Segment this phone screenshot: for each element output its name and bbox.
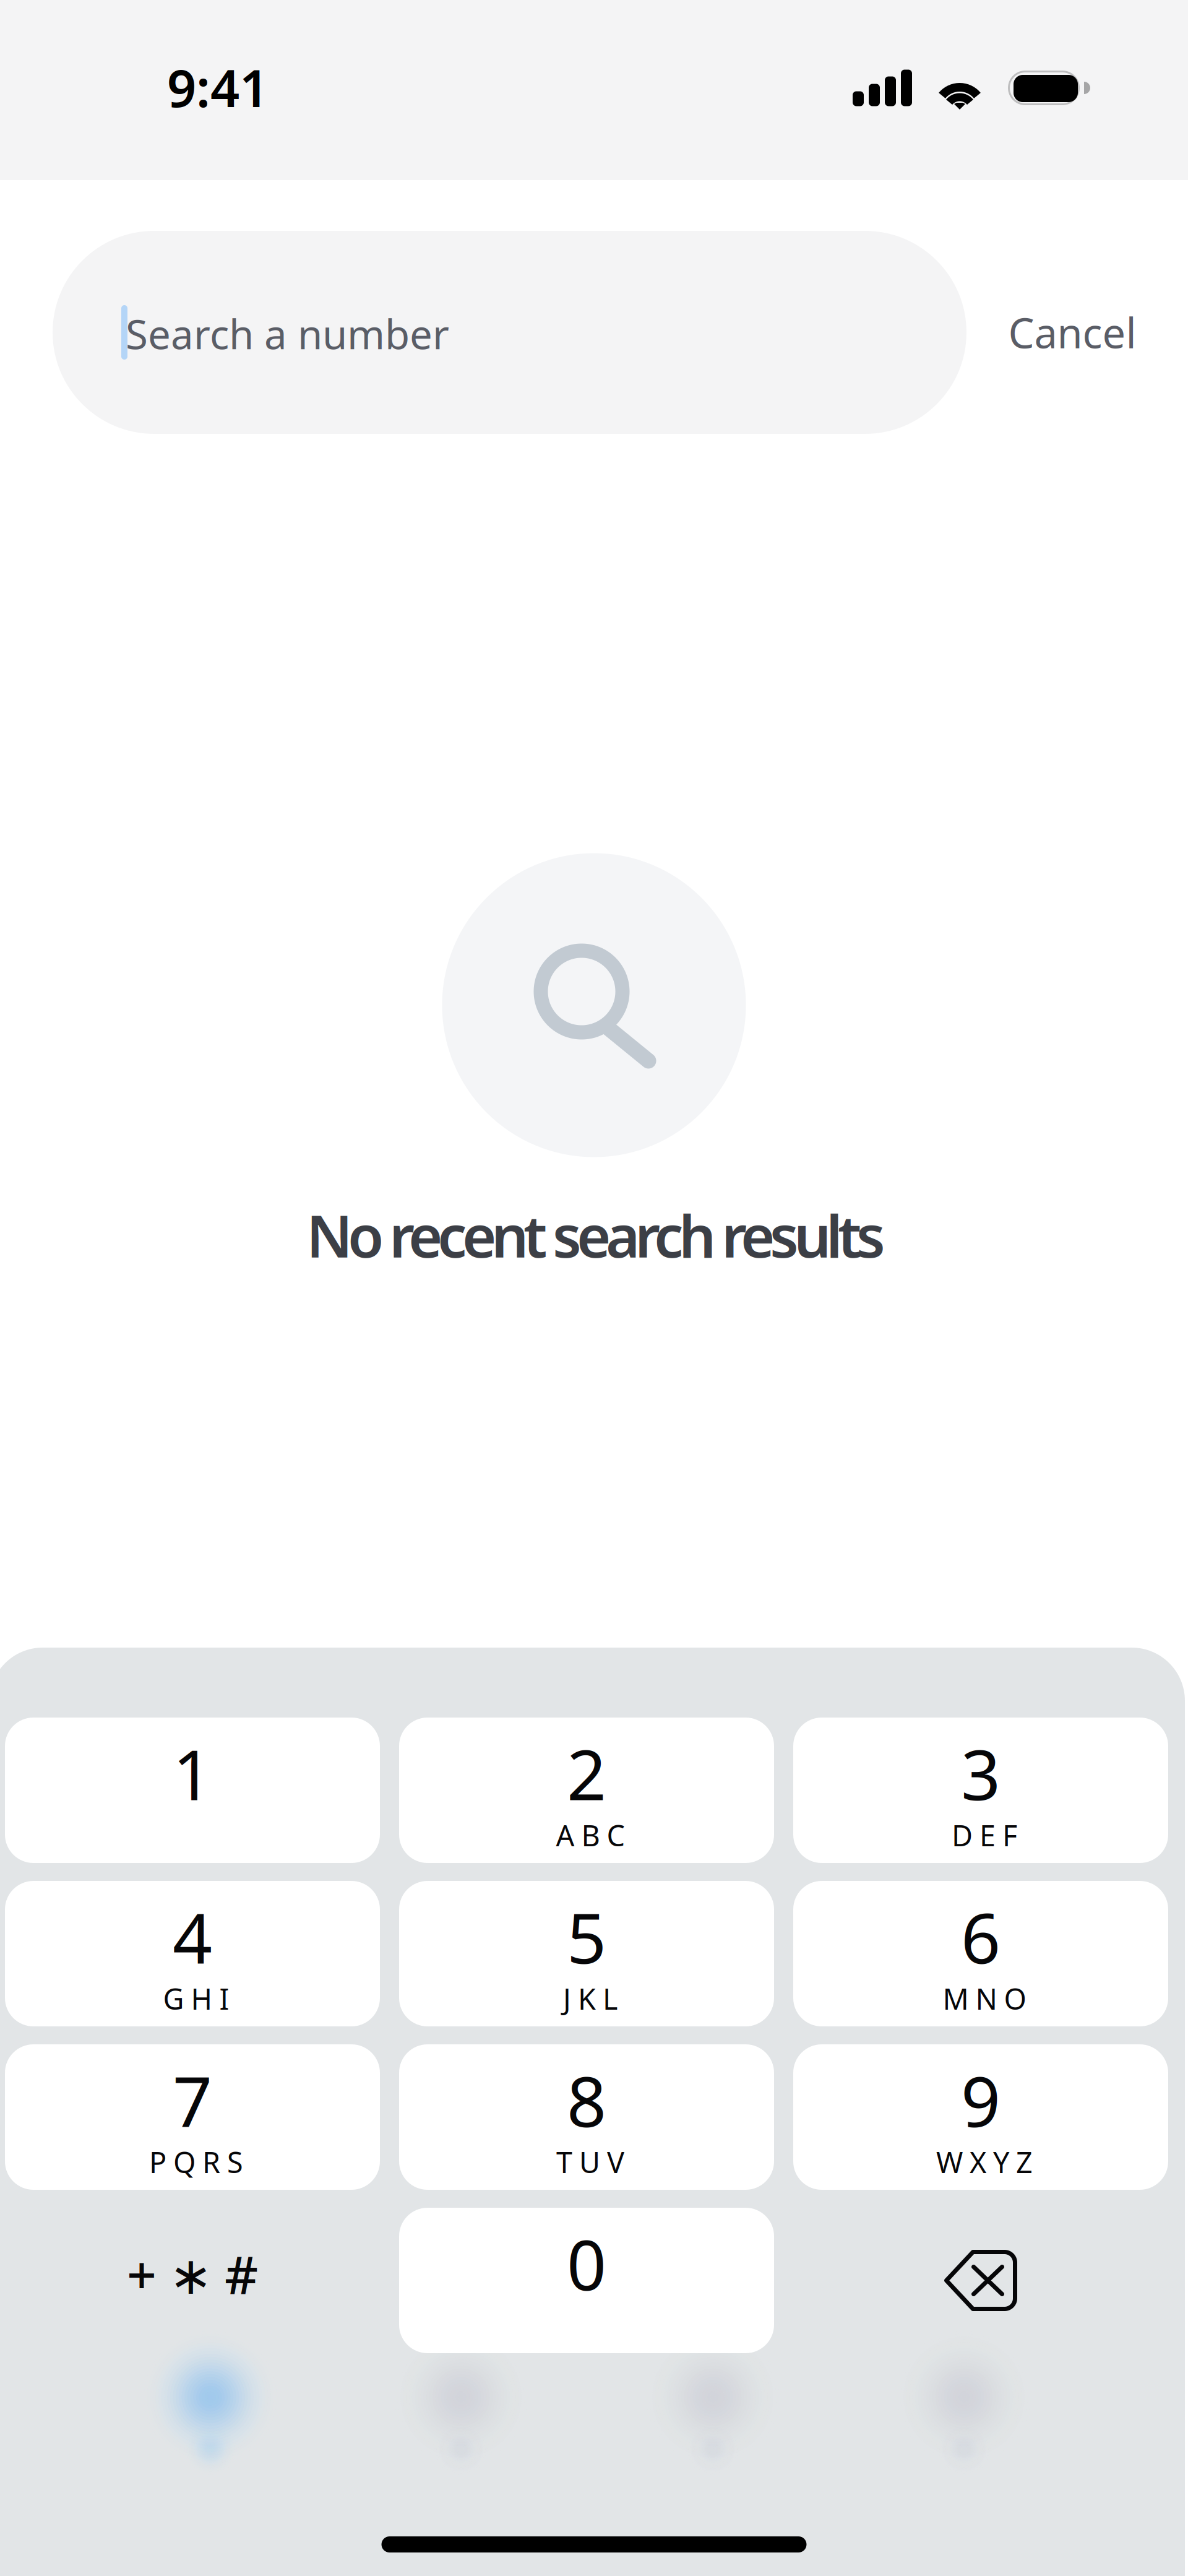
button[interactable]: 3 — [793, 1718, 1168, 1863]
staticText: No recent search results — [306, 1196, 885, 1274]
staticText: 3 — [961, 1727, 1001, 1819]
staticText: 4 — [173, 1891, 212, 1983]
button[interactable]: 4 — [5, 1881, 380, 2026]
staticText: TUV — [556, 2143, 624, 2181]
staticText: GHI — [163, 1979, 229, 2018]
button[interactable]: Delete — [793, 2208, 1168, 2353]
staticText: 7 — [173, 2054, 212, 2146]
staticText: MNO — [943, 1979, 1026, 2018]
staticText: 9:41 — [167, 53, 269, 121]
staticText: 0 — [567, 2217, 606, 2309]
button[interactable]: 9 — [793, 2044, 1168, 2190]
button[interactable]: 5 — [399, 1881, 774, 2026]
staticText: 9 — [961, 2054, 1001, 2146]
staticText: Cancel — [1008, 305, 1136, 360]
button[interactable]: Cancel — [990, 280, 1155, 384]
button[interactable]: 0 — [399, 2208, 774, 2353]
staticText: 1 — [173, 1727, 212, 1819]
staticText: 8 — [567, 2054, 606, 2146]
staticText: PQRS — [149, 2143, 243, 2181]
button[interactable]: + ∗ # — [5, 2208, 380, 2353]
button[interactable]: Search a number — [53, 231, 966, 434]
button[interactable]: 8 — [399, 2044, 774, 2190]
staticText: 2 — [567, 1727, 606, 1819]
button[interactable]: 7 — [5, 2044, 380, 2190]
staticText: JKL — [563, 1979, 618, 2018]
staticText: 6 — [961, 1891, 1001, 1983]
button[interactable]: 6 — [793, 1881, 1168, 2026]
button[interactable]: 2 — [399, 1718, 774, 1863]
staticText: ABC — [556, 1816, 625, 1854]
staticText: 5 — [567, 1891, 606, 1983]
staticText: WXYZ — [936, 2143, 1033, 2181]
button[interactable]: 1 — [5, 1718, 380, 1863]
staticText: DEF — [952, 1816, 1017, 1854]
staticText: Search a number — [126, 307, 449, 360]
staticText: + ∗ # — [127, 2239, 258, 2308]
